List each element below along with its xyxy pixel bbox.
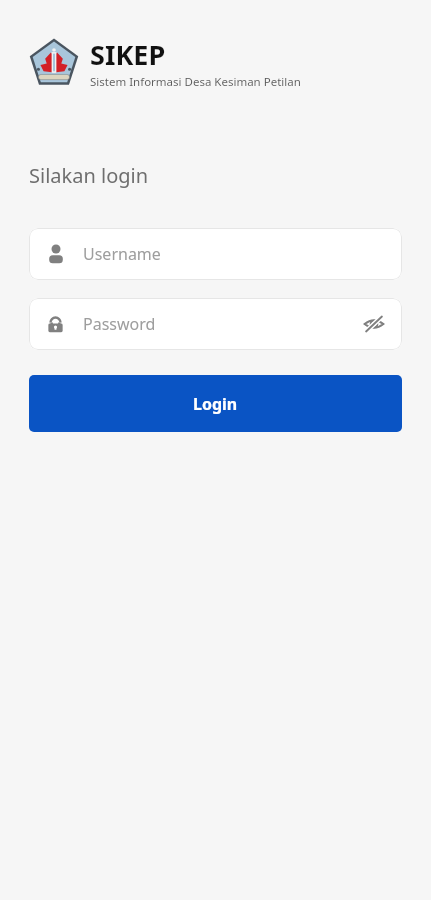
button[interactable]: Username (29, 228, 402, 280)
button[interactable]: Password (29, 298, 402, 350)
staticText: Silakan login (29, 162, 149, 189)
staticText: Sistem Informasi Desa Kesiman Petilan (90, 74, 301, 90)
staticText: Username (83, 243, 161, 265)
button[interactable]: Login (29, 375, 402, 432)
staticText: Login (193, 393, 238, 415)
button[interactable]: Show password (360, 310, 388, 338)
staticText: SIKEP (90, 36, 166, 73)
staticText: Password (83, 313, 360, 335)
